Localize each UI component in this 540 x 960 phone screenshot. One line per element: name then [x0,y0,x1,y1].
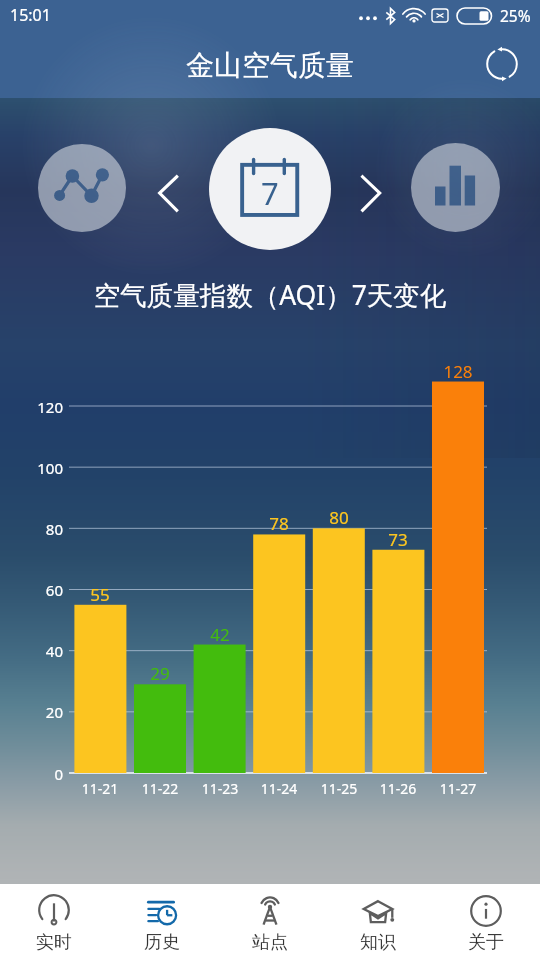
staticText: 知识 [360,931,396,954]
button[interactable]: Bar chart [411,143,500,232]
staticText: 7 [261,172,279,214]
staticText: 40 [20,641,63,661]
staticText: 100 [20,458,63,478]
button[interactable]: Previous [150,168,194,212]
staticText: 关于 [468,931,504,954]
staticText: 29 [134,662,186,685]
staticText: 11-23 [190,779,250,798]
staticText: 11-21 [70,779,130,798]
staticText: 60 [20,580,63,600]
button[interactable]: Next [353,168,397,212]
staticText: 11-26 [368,779,428,798]
button[interactable]: 实时 [0,884,108,960]
staticText: 78 [253,512,305,535]
staticText: 11-27 [428,779,488,798]
staticText: 0 [20,764,63,784]
staticText: 11-22 [130,779,190,798]
staticText: 42 [194,623,246,646]
button[interactable]: Line chart [38,144,126,232]
button[interactable]: 历史 [108,884,216,960]
button[interactable]: 知识 [324,884,432,960]
staticText: 25% [500,5,531,26]
staticText: 金山空气质量 [186,48,354,83]
staticText: 55 [74,583,126,606]
staticText: 15:01 [10,4,51,26]
staticText: 空气质量指数（AQI）7天变化 [0,277,540,313]
staticText: 80 [313,506,365,529]
staticText: 历史 [144,931,180,954]
staticText: 73 [372,528,424,551]
staticText: 128 [432,360,484,383]
staticText: 120 [20,397,63,417]
staticText: 11-24 [249,779,309,798]
staticText: 11-25 [309,779,369,798]
button[interactable]: Refresh [480,42,524,86]
button[interactable]: 站点 [216,884,324,960]
staticText: 站点 [252,931,288,954]
button[interactable]: 7 day calendar [209,128,331,250]
button[interactable]: 关于 [432,884,540,960]
staticText: 80 [20,519,63,539]
staticText: 实时 [36,931,72,954]
staticText: 20 [20,702,63,722]
